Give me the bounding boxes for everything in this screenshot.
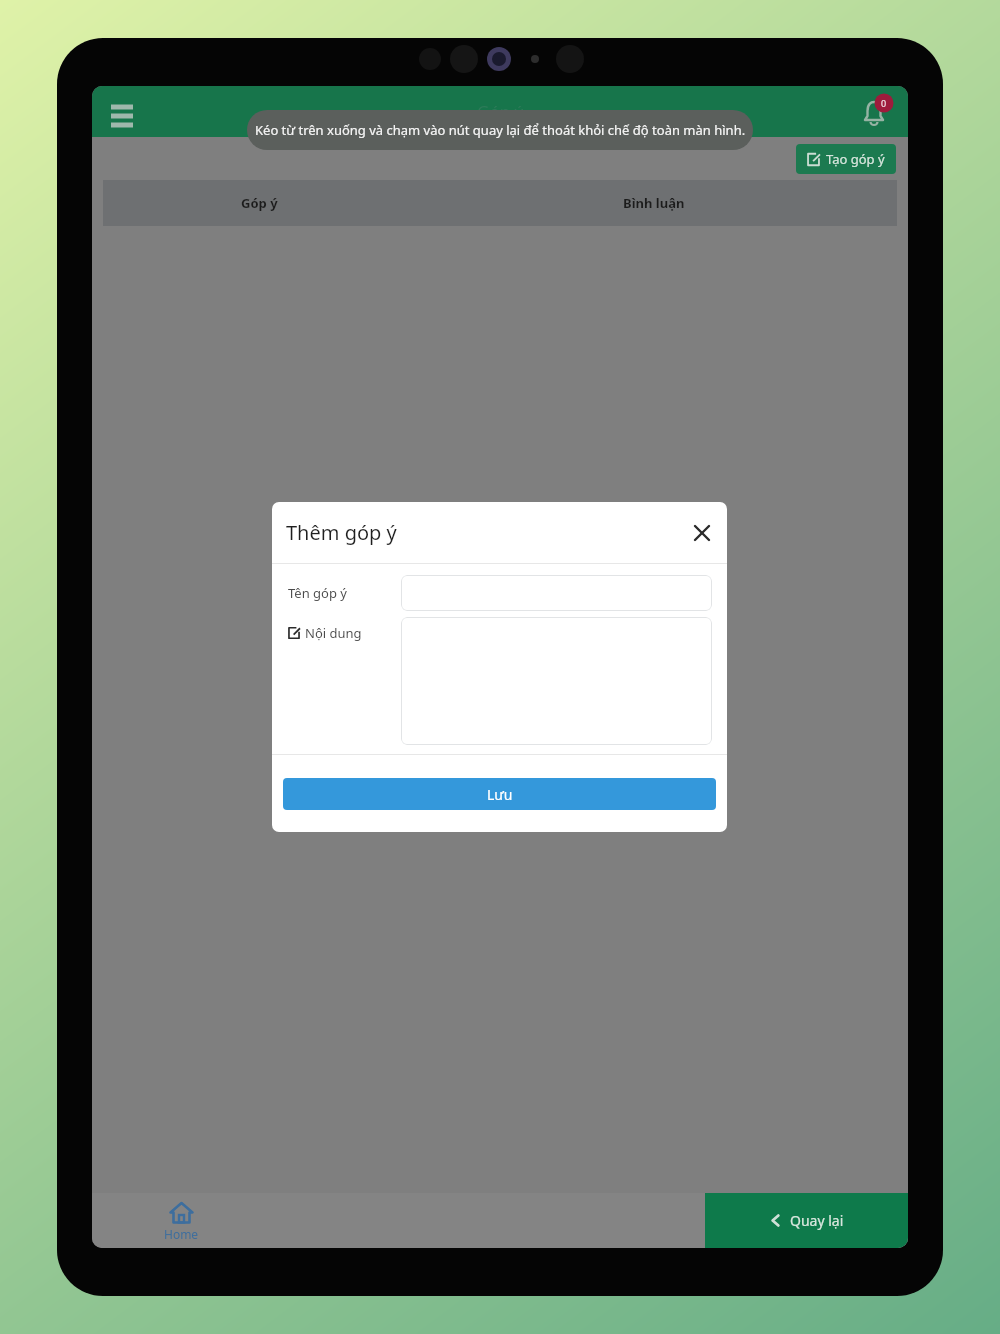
staticText: Tạo góp ý [826, 150, 885, 168]
staticText: Home [164, 1226, 199, 1242]
staticText: Lưu [487, 785, 513, 804]
button[interactable]: Quay lại [705, 1193, 908, 1248]
staticText: Tên góp ý [288, 584, 347, 602]
button[interactable]: Notifications [854, 91, 896, 133]
button[interactable]: Close [685, 516, 719, 550]
staticText: Quay lại [790, 1211, 844, 1230]
button[interactable]: Menu [100, 90, 144, 134]
button[interactable] [401, 617, 712, 745]
button[interactable]: Tạo góp ý [796, 144, 896, 174]
staticText: Góp ý [241, 194, 278, 212]
button[interactable] [401, 575, 712, 611]
staticText: Thêm góp ý [286, 519, 397, 546]
button[interactable]: Home [160, 1196, 203, 1246]
staticText: Kéo từ trên xuống và chạm vào nút quay l… [255, 121, 746, 139]
staticText: Nội dung [305, 624, 362, 642]
staticText: Góp ý [477, 100, 524, 123]
staticText: 0 [881, 97, 887, 109]
staticText: Bình luận [623, 194, 685, 212]
button[interactable]: Lưu [283, 778, 716, 810]
